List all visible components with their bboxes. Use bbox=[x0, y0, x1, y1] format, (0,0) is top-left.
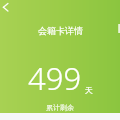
button[interactable]: 更多 bbox=[116, 24, 120, 33]
button[interactable]: 返回 bbox=[0, 1, 10, 16]
staticText: 天 bbox=[85, 85, 93, 95]
staticText: 累计剩余 bbox=[46, 103, 74, 112]
staticText: 会籍卡详情 bbox=[38, 25, 83, 36]
staticText: 499 bbox=[28, 57, 82, 99]
